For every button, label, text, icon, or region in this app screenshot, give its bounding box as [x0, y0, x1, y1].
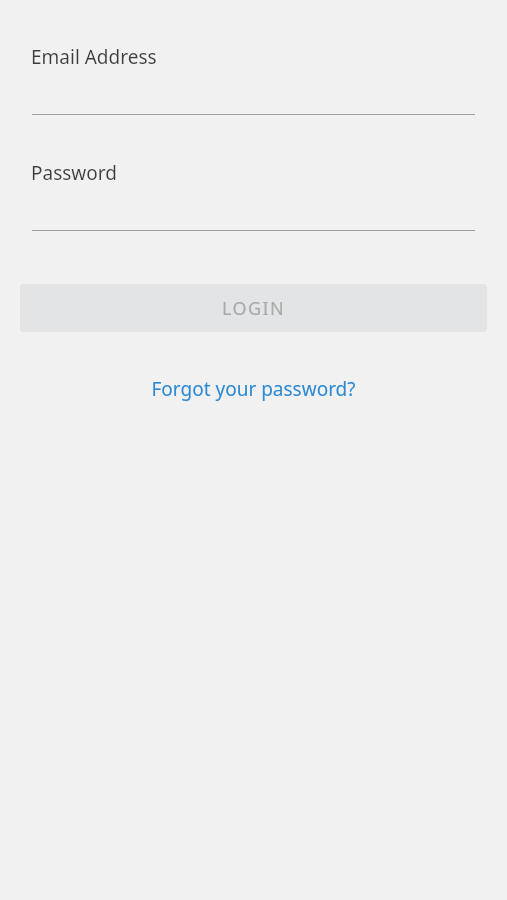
staticText: LOGIN: [222, 296, 286, 321]
staticText: Password: [31, 160, 117, 186]
button[interactable]: Forgot your password?: [143, 372, 364, 406]
button[interactable]: LOGIN: [20, 284, 487, 332]
staticText: Email Address: [31, 44, 157, 70]
staticText: Forgot your password?: [151, 376, 356, 402]
